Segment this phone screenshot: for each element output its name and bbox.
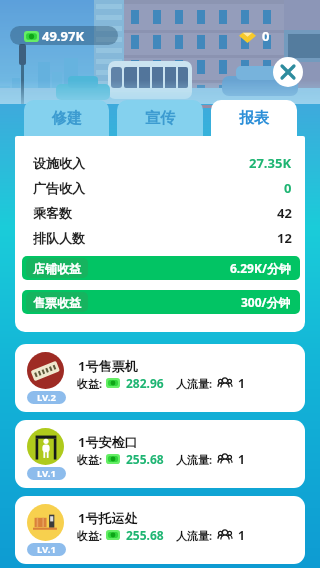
- staticText: 乘客数: [33, 205, 72, 221]
- staticText: 排队人数: [33, 230, 85, 246]
- staticText: 广告收入: [33, 180, 85, 196]
- staticText: 12: [277, 229, 292, 247]
- staticText: 1号安检口: [78, 433, 138, 451]
- staticText: 修建: [52, 109, 82, 128]
- staticText: LV.2: [37, 391, 56, 404]
- staticText: 6.29K/分钟: [230, 260, 291, 276]
- button[interactable]: LV.1: [15, 420, 305, 488]
- staticText: 人流量:: [176, 528, 213, 543]
- button[interactable]: LV.1: [15, 496, 305, 564]
- staticText: 收益:: [77, 528, 103, 543]
- button[interactable]: LV.2: [15, 344, 305, 412]
- button[interactable]: 报表: [211, 100, 297, 136]
- button[interactable]: 49.97K: [10, 26, 118, 45]
- staticText: 店铺收益: [33, 261, 81, 276]
- staticText: 人流量:: [176, 376, 213, 391]
- staticText: 42: [277, 204, 292, 222]
- staticText: LV.1: [37, 543, 56, 556]
- button[interactable]: 修建: [24, 100, 109, 136]
- button[interactable]: 宣传: [117, 100, 203, 136]
- staticText: 宣传: [145, 109, 175, 128]
- staticText: 255.68: [126, 527, 164, 543]
- staticText: 282.96: [126, 375, 164, 391]
- staticText: 收益:: [77, 452, 103, 467]
- staticText: 1号售票机: [78, 357, 138, 375]
- staticText: 27.35K: [249, 154, 292, 172]
- staticText: 人流量:: [176, 452, 213, 467]
- staticText: 300/分钟: [241, 294, 291, 310]
- staticText: LV.1: [37, 467, 56, 480]
- staticText: 1: [238, 375, 245, 391]
- staticText: 设施收入: [33, 155, 85, 171]
- staticText: 0: [262, 27, 270, 45]
- staticText: 49.97K: [42, 27, 85, 45]
- staticText: 255.68: [126, 451, 164, 467]
- staticText: 0: [284, 179, 292, 197]
- button[interactable]: Close: [273, 57, 303, 87]
- staticText: 1: [238, 451, 245, 467]
- staticText: 报表: [239, 109, 269, 128]
- staticText: 收益:: [77, 376, 103, 391]
- button[interactable]: 0: [239, 26, 270, 45]
- staticText: 1: [238, 527, 245, 543]
- staticText: 1号托运处: [78, 509, 138, 527]
- staticText: 售票收益: [33, 295, 81, 310]
